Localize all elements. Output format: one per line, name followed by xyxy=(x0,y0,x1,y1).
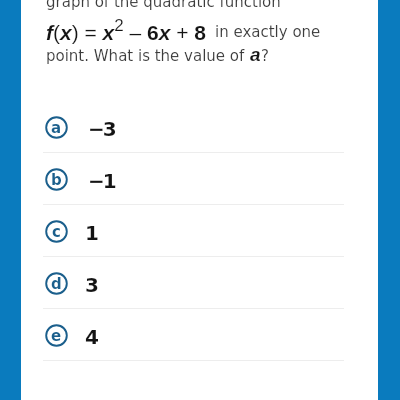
staticText: a xyxy=(250,44,261,65)
button[interactable]: Answer d: 3 xyxy=(21,257,378,309)
staticText: point. What is the value of xyxy=(46,47,250,64)
staticText: d xyxy=(51,275,62,292)
staticText: 1 xyxy=(85,221,97,244)
staticText: −1 xyxy=(88,169,115,192)
button[interactable]: Answer c: 1 xyxy=(21,205,378,257)
staticText: 3 xyxy=(85,273,97,296)
button[interactable]: Answer b: −1 xyxy=(21,153,378,205)
button[interactable]: Answer e: 4 xyxy=(21,309,378,361)
staticText: b xyxy=(51,171,62,188)
staticText: f(x) = x2 – 6x + 8 xyxy=(46,16,207,44)
button[interactable]: Answer a: −3 xyxy=(21,101,378,153)
staticText: c xyxy=(52,223,61,240)
staticText: in exactly one xyxy=(215,23,321,40)
staticText: 4 xyxy=(85,325,97,348)
staticText: a xyxy=(51,119,62,136)
staticText: −3 xyxy=(88,117,115,140)
staticText: e xyxy=(51,327,62,344)
staticText: graph of the quadratic function xyxy=(46,0,281,10)
staticText: ? xyxy=(261,47,269,64)
